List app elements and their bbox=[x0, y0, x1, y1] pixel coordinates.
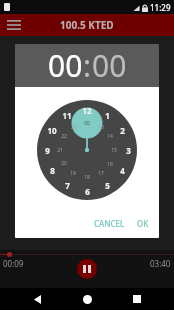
staticText: 20 bbox=[61, 160, 67, 167]
staticText: 23 bbox=[71, 124, 77, 131]
staticText: 11:29 bbox=[150, 2, 171, 13]
staticText: 11 bbox=[62, 110, 72, 121]
staticText: 2 bbox=[120, 125, 125, 136]
button[interactable]: Recent apps bbox=[124, 288, 150, 310]
staticText: 9 bbox=[45, 145, 50, 156]
button[interactable]: 00 bbox=[48, 45, 83, 86]
staticText: 8 bbox=[50, 165, 55, 176]
staticText: 22 bbox=[61, 133, 67, 140]
button[interactable]: 00 bbox=[92, 45, 127, 86]
staticText: : bbox=[83, 45, 92, 86]
staticText: 100.5 KTED bbox=[60, 18, 114, 32]
staticText: 18 bbox=[84, 174, 90, 181]
staticText: 13 bbox=[98, 124, 104, 131]
staticText: 00 bbox=[84, 120, 90, 127]
staticText: 14 bbox=[107, 133, 113, 140]
button[interactable]: Seek bar bbox=[0, 250, 174, 258]
staticText: 21 bbox=[57, 147, 63, 154]
button[interactable]: Open navigation menu bbox=[4, 15, 24, 35]
staticText: OK bbox=[137, 218, 149, 229]
staticText: 10 bbox=[47, 125, 57, 136]
staticText: 3 bbox=[126, 145, 131, 156]
staticText: 7 bbox=[65, 180, 70, 191]
button[interactable]: OK bbox=[131, 215, 159, 232]
staticText: 17 bbox=[98, 170, 104, 177]
staticText: 12 bbox=[82, 105, 92, 116]
staticText: 16 bbox=[107, 161, 113, 168]
staticText: CANCEL bbox=[94, 218, 125, 229]
staticText: 6 bbox=[85, 186, 90, 197]
button[interactable]: Back bbox=[24, 288, 50, 310]
staticText: 1 bbox=[105, 110, 110, 121]
staticText: 00:09 bbox=[3, 258, 24, 269]
staticText: 19 bbox=[70, 170, 76, 177]
staticText: 5 bbox=[105, 180, 110, 191]
button[interactable]: Pause bbox=[77, 259, 97, 279]
staticText: 03:40 bbox=[150, 258, 171, 269]
button[interactable]: Clock dial, hour selection bbox=[37, 100, 137, 200]
staticText: 15 bbox=[111, 147, 117, 154]
button[interactable]: Home bbox=[74, 288, 100, 310]
staticText: 4 bbox=[120, 165, 125, 176]
button[interactable]: CANCEL bbox=[88, 215, 131, 232]
